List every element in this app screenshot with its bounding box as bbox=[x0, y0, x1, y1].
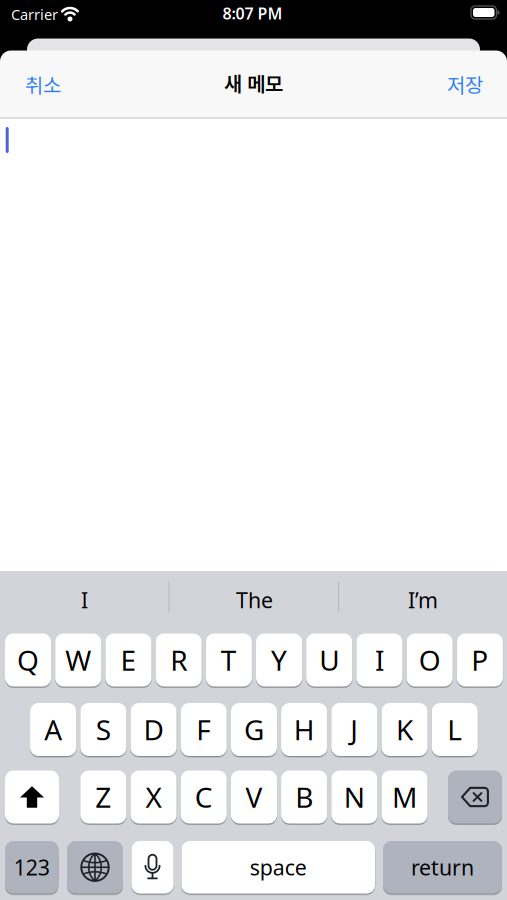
button[interactable]: I’m bbox=[343, 578, 503, 622]
button[interactable]: Dictate bbox=[131, 841, 173, 893]
staticText: Q bbox=[17, 641, 39, 679]
button[interactable]: T bbox=[206, 633, 252, 686]
button[interactable]: space bbox=[181, 841, 375, 893]
button[interactable]: U bbox=[306, 633, 352, 686]
staticText: M bbox=[392, 778, 417, 816]
staticText: J bbox=[350, 711, 358, 748]
staticText: T bbox=[221, 641, 237, 679]
button[interactable]: K bbox=[381, 703, 428, 756]
staticText: C bbox=[195, 778, 213, 816]
staticText: K bbox=[396, 711, 413, 748]
button[interactable]: H bbox=[281, 703, 327, 756]
button[interactable]: F bbox=[181, 703, 227, 756]
button[interactable]: return bbox=[383, 841, 502, 893]
staticText: G bbox=[244, 711, 264, 748]
staticText: D bbox=[144, 711, 164, 748]
button[interactable]: P bbox=[457, 633, 503, 686]
button[interactable]: J bbox=[331, 703, 377, 756]
staticText: U bbox=[319, 641, 339, 679]
button[interactable]: D bbox=[130, 703, 177, 756]
staticText: E bbox=[120, 641, 136, 679]
staticText: H bbox=[294, 711, 315, 748]
staticText: 취소 bbox=[25, 69, 61, 98]
button[interactable]: W bbox=[55, 633, 101, 686]
button[interactable]: 저장 bbox=[403, 62, 483, 106]
button[interactable]: V bbox=[231, 770, 277, 823]
button[interactable]: O bbox=[407, 633, 453, 686]
staticText: R bbox=[170, 641, 187, 679]
button[interactable]: C bbox=[181, 770, 227, 823]
button[interactable]: B bbox=[281, 770, 327, 823]
staticText: S bbox=[96, 711, 111, 748]
button[interactable]: Numbers bbox=[5, 841, 58, 893]
button[interactable]: Delete bbox=[448, 770, 502, 823]
staticText: 123 bbox=[14, 853, 50, 881]
button[interactable]: E bbox=[105, 633, 151, 686]
button[interactable]: Z bbox=[80, 770, 126, 823]
button[interactable]: I bbox=[356, 633, 402, 686]
button[interactable]: I bbox=[4, 578, 164, 622]
button[interactable]: A bbox=[30, 703, 76, 756]
staticText: O bbox=[419, 641, 441, 679]
staticText: Y bbox=[271, 641, 287, 679]
staticText: Z bbox=[95, 778, 111, 816]
staticText: 저장 bbox=[447, 69, 483, 98]
staticText: 8:07 PM bbox=[222, 3, 282, 24]
staticText: P bbox=[471, 641, 488, 679]
staticText: F bbox=[196, 711, 211, 748]
staticText: 새 메모 bbox=[224, 68, 283, 97]
button[interactable]: M bbox=[381, 770, 428, 823]
button[interactable]: X bbox=[130, 770, 177, 823]
staticText: The bbox=[236, 586, 273, 614]
button[interactable]: G bbox=[231, 703, 277, 756]
button[interactable]: The bbox=[174, 578, 334, 622]
staticText: B bbox=[295, 778, 313, 816]
staticText: I bbox=[375, 641, 384, 679]
staticText: space bbox=[250, 853, 307, 881]
staticText: I bbox=[81, 586, 88, 614]
button[interactable]: Shift bbox=[5, 770, 59, 823]
staticText: W bbox=[65, 641, 91, 679]
staticText: A bbox=[44, 711, 62, 748]
button[interactable]: Next keyboard bbox=[67, 841, 123, 893]
staticText: I’m bbox=[408, 586, 438, 614]
staticText: V bbox=[245, 778, 262, 816]
staticText: Carrier bbox=[11, 4, 58, 24]
button[interactable]: R bbox=[156, 633, 202, 686]
staticText: N bbox=[344, 778, 365, 816]
button[interactable]: Q bbox=[5, 633, 51, 686]
button[interactable]: L bbox=[432, 703, 478, 756]
button[interactable]: 취소 bbox=[25, 62, 105, 106]
staticText: L bbox=[447, 711, 462, 748]
button[interactable]: N bbox=[331, 770, 377, 823]
staticText: return bbox=[411, 853, 474, 881]
staticText: X bbox=[146, 778, 162, 816]
button[interactable]: Y bbox=[256, 633, 302, 686]
button[interactable]: S bbox=[80, 703, 126, 756]
